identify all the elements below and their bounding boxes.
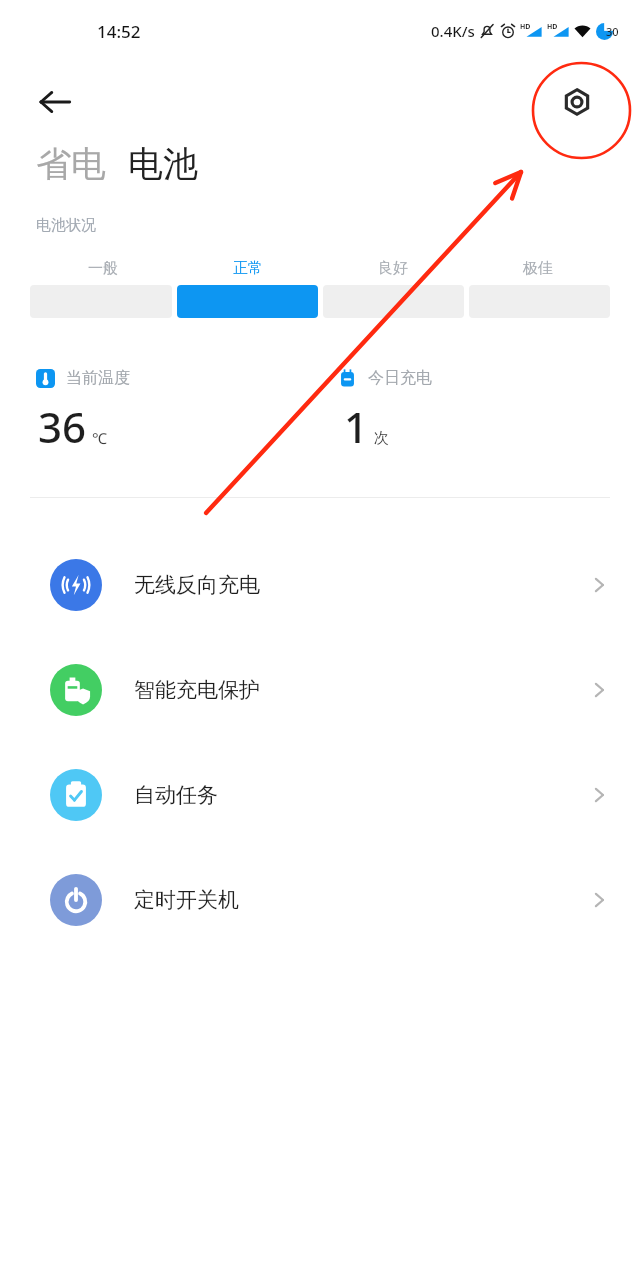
staticText: 14:52 xyxy=(97,20,141,43)
staticText: 智能充电保护 xyxy=(134,677,260,703)
staticText: 电池状况 xyxy=(36,216,96,235)
staticText: 正常 xyxy=(233,259,263,278)
button[interactable]: 良好 xyxy=(323,285,464,318)
button[interactable]: 智能充电保护 xyxy=(0,637,640,742)
staticText: 今日充电 xyxy=(368,368,432,388)
staticText: 当前温度 xyxy=(66,368,130,388)
staticText: 次 xyxy=(374,429,389,448)
staticText: 无线反向充电 xyxy=(134,572,260,598)
staticText: 36 xyxy=(38,398,87,455)
button[interactable]: 定时开关机 xyxy=(0,847,640,952)
staticText: 自动任务 xyxy=(134,782,218,808)
staticText: HD xyxy=(520,22,531,32)
staticText: 1 xyxy=(344,398,369,455)
staticText: 良好 xyxy=(378,259,408,278)
staticText: 30 xyxy=(606,24,619,39)
staticText: ℃ xyxy=(92,428,107,448)
button[interactable]: 正常 xyxy=(177,285,318,318)
staticText: 0.4K/s xyxy=(431,21,475,41)
staticText: 定时开关机 xyxy=(134,887,239,913)
staticText: 省电 xyxy=(36,142,106,186)
staticText: 电池 xyxy=(128,142,198,186)
staticText: 一般 xyxy=(88,259,118,278)
button[interactable]: 返回 xyxy=(28,75,82,129)
button[interactable]: 设置 xyxy=(550,75,604,129)
button[interactable]: 自动任务 xyxy=(0,742,640,847)
button[interactable]: 无线反向充电 xyxy=(0,532,640,637)
staticText: 极佳 xyxy=(523,259,553,278)
staticText: HD xyxy=(547,22,558,32)
